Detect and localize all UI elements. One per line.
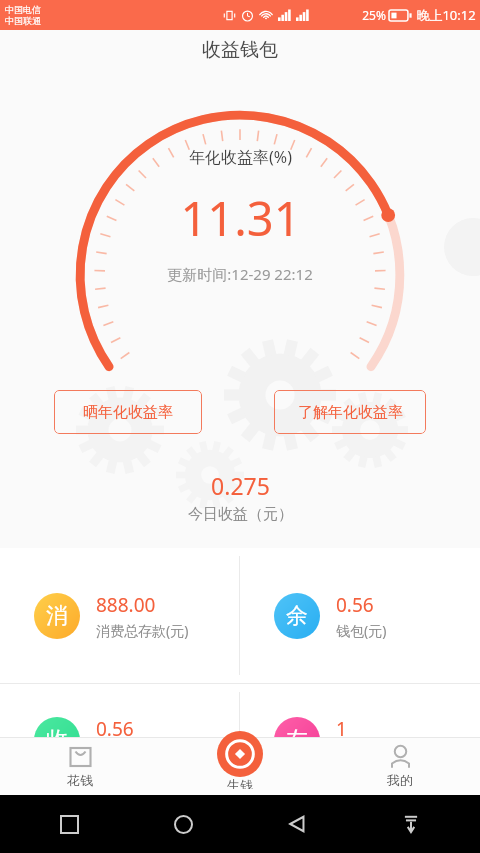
staticText: 25% bbox=[362, 7, 386, 23]
staticText: 中国电信 bbox=[5, 4, 41, 15]
button[interactable]: 花钱 bbox=[0, 737, 160, 795]
button[interactable]: 了解年化收益率 bbox=[274, 390, 426, 434]
button[interactable]: 友 bbox=[240, 684, 480, 795]
staticText: 收益钱包 bbox=[202, 38, 278, 62]
button[interactable]: Back bbox=[280, 807, 314, 841]
button[interactable]: 晒年化收益率 bbox=[54, 390, 202, 434]
button[interactable]: 收 bbox=[0, 684, 239, 795]
button[interactable]: 我的 bbox=[320, 737, 480, 795]
staticText: 我的 bbox=[387, 772, 413, 788]
staticText: 友 bbox=[286, 726, 308, 754]
staticText: 消 bbox=[46, 602, 68, 630]
button[interactable]: 生钱 bbox=[217, 737, 263, 795]
staticText: 余 bbox=[286, 602, 308, 630]
staticText: 晚上10:12 bbox=[416, 6, 476, 24]
staticText: 收 bbox=[46, 726, 68, 754]
button[interactable]: 余 bbox=[240, 548, 480, 683]
staticText: 0.275 bbox=[211, 470, 270, 501]
button[interactable]: 消 bbox=[0, 548, 239, 683]
staticText: 0.56 bbox=[336, 592, 374, 618]
staticText: 年化收益率(%) bbox=[189, 146, 292, 168]
staticText: 更新时间:12-29 22:12 bbox=[167, 264, 313, 284]
staticText: 生钱 bbox=[227, 777, 253, 789]
staticText: 1 bbox=[336, 716, 347, 742]
staticText: 了解年化收益率 bbox=[298, 403, 403, 422]
staticText: 888.00 bbox=[96, 592, 156, 618]
staticText: 今日收益（元） bbox=[188, 505, 293, 524]
staticText: 钱包(元) bbox=[336, 621, 387, 640]
staticText: 消费总存款(元) bbox=[96, 621, 189, 640]
staticText: 晒年化收益率 bbox=[83, 403, 173, 422]
staticText: 0.56 bbox=[96, 716, 134, 742]
button[interactable]: Hide navigation bar bbox=[394, 807, 428, 841]
staticText: 11.31 bbox=[180, 186, 301, 250]
button[interactable]: Recents bbox=[52, 807, 86, 841]
staticText: 花钱 bbox=[67, 772, 93, 788]
button[interactable]: Home bbox=[166, 807, 200, 841]
staticText: 中国联通 bbox=[5, 15, 41, 26]
